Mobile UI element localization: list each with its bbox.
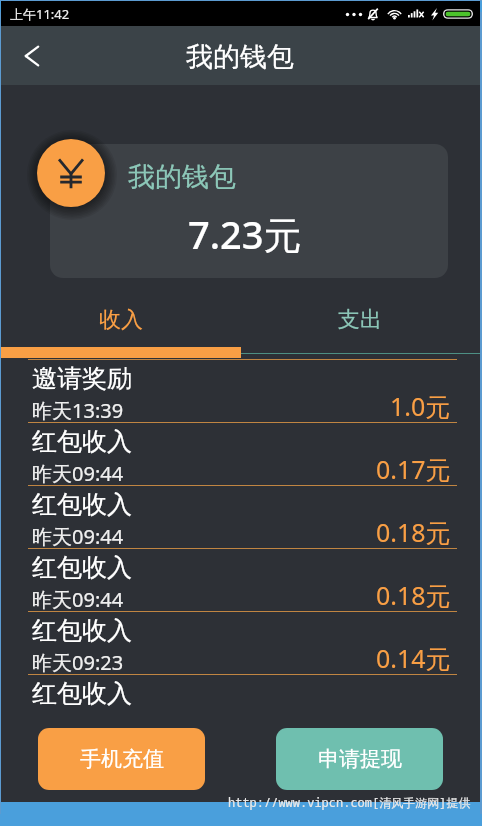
- staticText: 上午11:42: [10, 5, 70, 23]
- staticText: 红包收入: [32, 552, 132, 583]
- button[interactable]: 红包收入: [1, 675, 480, 707]
- staticText: 红包收入: [32, 678, 132, 709]
- button[interactable]: 红包收入: [1, 486, 480, 548]
- staticText: 我的钱包: [128, 160, 236, 194]
- button[interactable]: 申请提现: [276, 728, 443, 790]
- staticText: 红包收入: [32, 615, 132, 646]
- button[interactable]: 手机充值: [38, 728, 205, 790]
- staticText: 昨天09:44: [32, 523, 124, 550]
- staticText: 1.0元: [390, 389, 451, 423]
- staticText: 7.23元: [188, 208, 302, 260]
- button[interactable]: 支出: [240, 294, 480, 345]
- button[interactable]: 红包收入: [1, 423, 480, 485]
- staticText: 我的钱包: [186, 40, 294, 74]
- staticText: 0.17元: [376, 452, 451, 486]
- staticText: 昨天09:44: [32, 460, 124, 487]
- staticText: 0.18元: [376, 578, 451, 612]
- staticText: 手机充值: [80, 746, 164, 772]
- button[interactable]: 邀请奖励: [1, 360, 480, 422]
- staticText: 红包收入: [32, 426, 132, 457]
- staticText: 红包收入: [32, 489, 132, 520]
- staticText: 昨天09:44: [32, 586, 124, 613]
- staticText: 邀请奖励: [32, 363, 132, 394]
- button[interactable]: Back: [6, 30, 58, 82]
- staticText: 支出: [338, 306, 382, 334]
- button[interactable]: 红包收入: [1, 612, 480, 674]
- staticText: 0.14元: [376, 641, 451, 675]
- button[interactable]: 红包收入: [1, 549, 480, 611]
- staticText: 申请提现: [318, 746, 402, 772]
- staticText: 收入: [99, 306, 143, 334]
- button[interactable]: 收入: [1, 294, 240, 345]
- staticText: 昨天13:39: [32, 397, 124, 424]
- staticText: http://www.vipcn.com[清风手游网]提供: [228, 794, 471, 810]
- staticText: 昨天09:23: [32, 649, 124, 676]
- staticText: 0.18元: [376, 515, 451, 549]
